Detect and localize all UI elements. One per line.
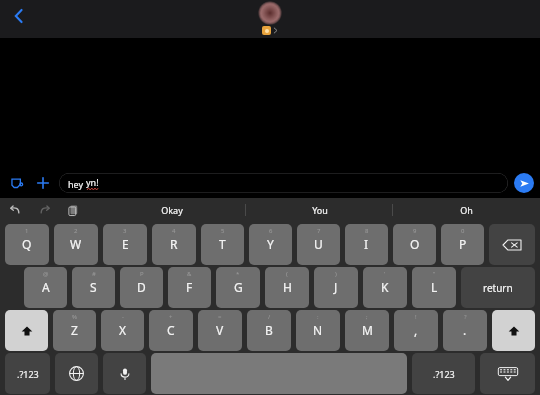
staticText: B — [265, 322, 273, 338]
button[interactable]: ; — [345, 310, 389, 351]
button[interactable]: / — [247, 310, 291, 351]
staticText: # — [92, 270, 96, 278]
staticText: 8 — [365, 227, 369, 235]
staticText: N — [313, 322, 323, 338]
button[interactable]: Shift — [5, 310, 48, 351]
button[interactable]: ! — [394, 310, 438, 351]
button[interactable]: P — [120, 267, 163, 308]
button[interactable]: + — [149, 310, 193, 351]
button[interactable]: 9 — [393, 224, 436, 265]
staticText: A — [42, 279, 50, 295]
staticText: - — [122, 313, 124, 321]
staticText: J — [334, 279, 338, 295]
button[interactable]: " — [412, 267, 456, 308]
staticText: Y — [267, 236, 274, 252]
staticText: ' — [384, 270, 386, 278]
staticText: 5 — [221, 227, 225, 235]
staticText: , — [414, 322, 418, 338]
staticText: hey — [68, 178, 86, 190]
staticText: ; — [366, 313, 368, 321]
button[interactable]: Back — [4, 1, 34, 31]
button[interactable]: Okay — [98, 198, 246, 222]
button[interactable]: 0 — [441, 224, 484, 265]
staticText: 6 — [269, 227, 273, 235]
button[interactable]: ? — [443, 310, 487, 351]
staticText: 0 — [461, 227, 465, 235]
staticText: S — [90, 279, 97, 295]
staticText: & — [187, 270, 192, 278]
staticText: Z — [71, 322, 78, 338]
button[interactable]: Contact profile — [258, 1, 282, 35]
staticText: M — [362, 322, 373, 338]
button[interactable]: Undo — [0, 198, 30, 222]
button[interactable]: : — [296, 310, 340, 351]
button[interactable]: return — [461, 267, 535, 308]
staticText: V — [216, 322, 224, 338]
staticText: R — [170, 236, 178, 252]
staticText: 2 — [74, 227, 78, 235]
button[interactable]: hey — [59, 173, 508, 193]
staticText: / — [268, 313, 271, 321]
staticText: return — [483, 281, 513, 295]
button[interactable]: 1 — [5, 224, 49, 265]
staticText: U — [314, 236, 323, 252]
staticText: X — [119, 322, 127, 338]
staticText: I — [364, 236, 369, 252]
staticText: P — [459, 236, 467, 252]
button[interactable]: You — [246, 198, 393, 222]
button[interactable]: % — [53, 310, 96, 351]
staticText: T — [219, 236, 226, 252]
staticText: O — [410, 236, 420, 252]
staticText: 7 — [317, 227, 321, 235]
button[interactable]: .?123 — [5, 353, 50, 394]
button[interactable]: Send — [514, 173, 534, 193]
staticText: : — [317, 313, 319, 321]
staticText: D — [137, 279, 146, 295]
button[interactable]: Voice input — [103, 353, 146, 394]
button[interactable]: 2 — [54, 224, 98, 265]
staticText: F — [186, 279, 193, 295]
button[interactable]: Hide keyboard — [480, 353, 535, 394]
staticText: + — [169, 313, 173, 321]
button[interactable]: 4 — [152, 224, 196, 265]
staticText: Okay — [161, 204, 183, 216]
button[interactable]: 5 — [201, 224, 244, 265]
button[interactable]: 7 — [297, 224, 340, 265]
button[interactable]: Change keyboard — [55, 353, 98, 394]
button[interactable]: ' — [363, 267, 407, 308]
button[interactable]: ( — [265, 267, 309, 308]
button[interactable]: Shift — [492, 310, 535, 351]
button[interactable]: 6 — [249, 224, 292, 265]
staticText: .?123 — [17, 368, 39, 380]
staticText: 1 — [25, 227, 29, 235]
button[interactable]: 3 — [103, 224, 147, 265]
button[interactable]: @ — [24, 267, 67, 308]
button[interactable]: Space — [151, 353, 407, 394]
button[interactable]: Camera — [6, 172, 28, 194]
staticText: % — [72, 313, 77, 321]
staticText: ? — [464, 313, 467, 321]
button[interactable]: ) — [314, 267, 358, 308]
button[interactable]: Paste — [60, 198, 86, 222]
staticText: .?123 — [433, 368, 455, 380]
button[interactable]: # — [72, 267, 115, 308]
button[interactable]: Add attachment — [32, 172, 54, 194]
button[interactable]: 8 — [345, 224, 388, 265]
button[interactable]: & — [168, 267, 211, 308]
button[interactable]: * — [216, 267, 260, 308]
staticText: 3 — [123, 227, 127, 235]
button[interactable]: Backspace — [489, 224, 535, 265]
button[interactable]: = — [198, 310, 242, 351]
staticText: W — [70, 236, 82, 252]
button[interactable]: .?123 — [412, 353, 475, 394]
staticText: H — [283, 279, 292, 295]
button[interactable]: Redo — [30, 198, 60, 222]
staticText: " — [433, 270, 436, 278]
staticText: * — [236, 270, 240, 278]
staticText: @ — [43, 270, 49, 278]
button[interactable]: - — [101, 310, 144, 351]
staticText: = — [218, 313, 222, 321]
button[interactable]: Oh — [393, 198, 540, 222]
staticText: . — [463, 322, 467, 338]
staticText: Q — [22, 236, 32, 252]
